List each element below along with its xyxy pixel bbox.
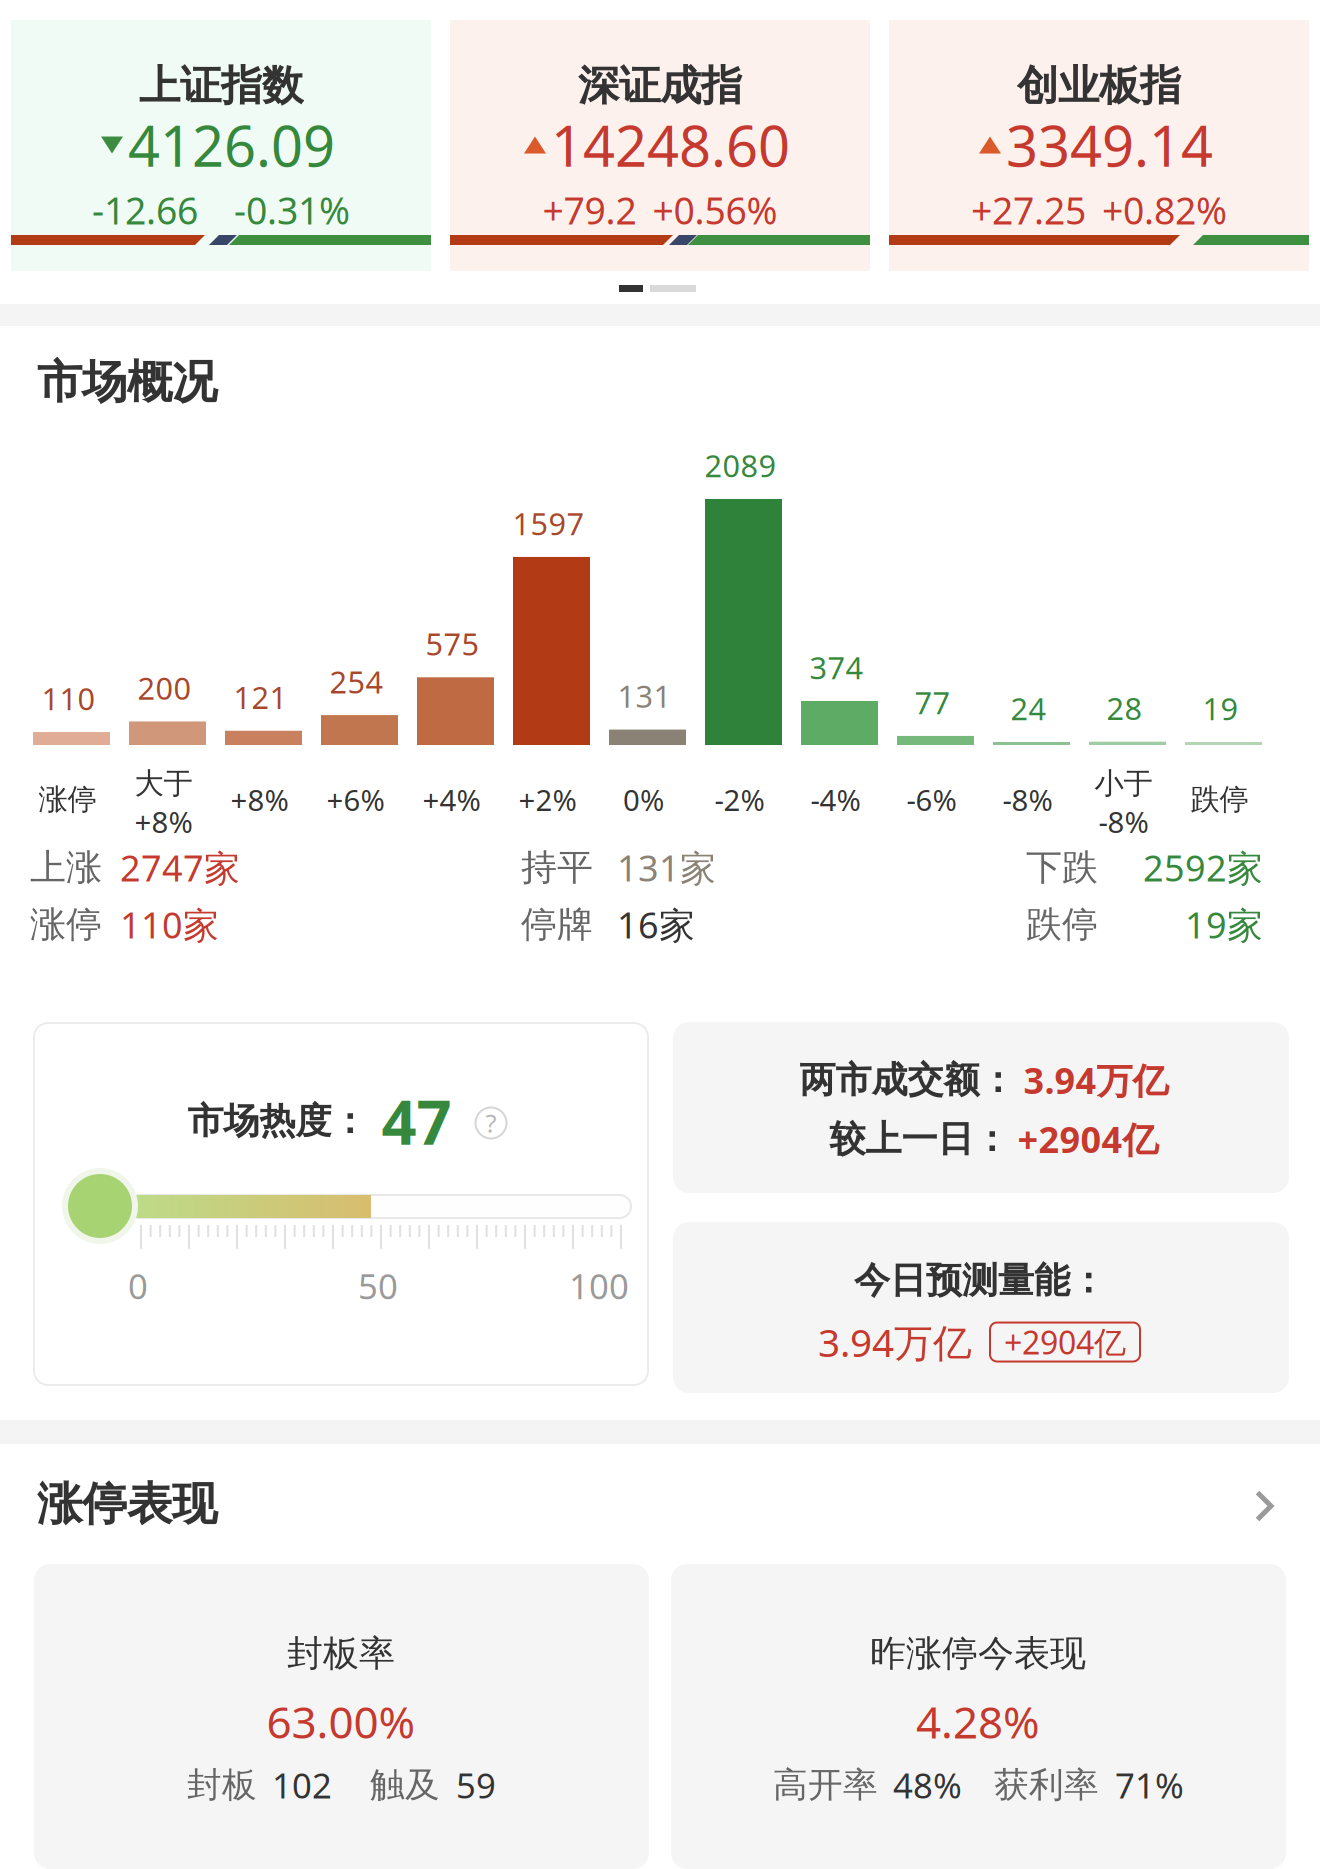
- staticText: 停牌: [521, 902, 593, 947]
- staticText: 19: [1202, 688, 1238, 729]
- staticText: +8%: [134, 802, 192, 841]
- staticText: 28: [1106, 688, 1142, 728]
- staticText: 4126.09: [128, 108, 335, 182]
- button[interactable]: 昨涨停今表现: [671, 1564, 1286, 1869]
- staticText: 3.94万亿: [818, 1316, 972, 1368]
- staticText: 131: [617, 676, 671, 716]
- staticText: +6%: [326, 780, 384, 819]
- staticText: +27.25: [971, 185, 1086, 235]
- staticText: 2592家: [1143, 844, 1263, 891]
- staticText: 110家: [120, 901, 219, 948]
- staticText: 封板: [187, 1764, 257, 1806]
- staticText: 121: [233, 677, 287, 717]
- staticText: 77: [914, 682, 950, 723]
- staticText: 涨停: [30, 902, 102, 947]
- staticText: 16家: [617, 901, 695, 948]
- staticText: 涨停: [38, 782, 96, 818]
- staticText: 持平: [521, 845, 593, 890]
- button[interactable]: 上证指数: [11, 20, 431, 271]
- staticText: -8%: [1002, 780, 1052, 819]
- staticText: 市场概况: [37, 354, 217, 410]
- staticText: 获利率: [994, 1764, 1099, 1806]
- staticText: 100: [569, 1263, 629, 1309]
- staticText: 昨涨停今表现: [870, 1631, 1086, 1676]
- staticText: 两市成交额：: [799, 1058, 1015, 1102]
- staticText: 200: [137, 667, 191, 708]
- staticText: ?: [485, 1106, 496, 1140]
- staticText: 下跌: [1026, 845, 1098, 890]
- staticText: 48%: [893, 1762, 962, 1808]
- button[interactable]: 涨停表现: [0, 1444, 1320, 1564]
- staticText: 102: [272, 1762, 332, 1808]
- staticText: 63.00%: [266, 1692, 415, 1751]
- staticText: +2904亿: [1017, 1115, 1158, 1163]
- staticText: -2%: [714, 780, 764, 819]
- staticText: +2904亿: [1004, 1321, 1126, 1363]
- staticText: 0%: [623, 780, 664, 819]
- staticText: -6%: [906, 780, 956, 819]
- staticText: +79.2: [542, 185, 636, 235]
- staticText: +0.82%: [1102, 185, 1227, 235]
- staticText: 跌停: [1190, 782, 1248, 818]
- staticText: 触及: [370, 1764, 440, 1806]
- staticText: 较上一日：: [829, 1117, 1009, 1161]
- staticText: 创业板指: [1017, 60, 1181, 111]
- staticText: 深证成指: [578, 60, 742, 111]
- staticText: 2747家: [120, 844, 240, 891]
- staticText: 2089: [704, 445, 776, 486]
- staticText: 市场热度：: [187, 1099, 367, 1143]
- staticText: 14248.60: [551, 108, 790, 182]
- staticText: 254: [329, 661, 383, 702]
- staticText: 高开率: [773, 1764, 878, 1806]
- button[interactable]: 封板率: [34, 1564, 649, 1869]
- staticText: +4%: [422, 780, 480, 819]
- staticText: 涨停表现: [37, 1476, 217, 1532]
- button[interactable]: 市场热度说明: [475, 1107, 506, 1138]
- button[interactable]: 创业板指: [889, 20, 1309, 271]
- staticText: 3.94万亿: [1023, 1056, 1168, 1104]
- staticText: 小于: [1094, 766, 1152, 802]
- staticText: 575: [425, 623, 479, 664]
- staticText: 大于: [134, 766, 192, 802]
- staticText: 71%: [1115, 1762, 1184, 1808]
- staticText: 上涨: [30, 845, 102, 890]
- staticText: 47: [381, 1080, 451, 1162]
- staticText: 3349.14: [1006, 108, 1213, 182]
- staticText: 19家: [1185, 901, 1263, 948]
- staticText: 4.28%: [916, 1692, 1040, 1751]
- staticText: 50: [358, 1263, 398, 1309]
- staticText: +8%: [230, 780, 288, 819]
- staticText: 59: [456, 1762, 496, 1808]
- staticText: 24: [1010, 688, 1046, 729]
- staticText: 今日预测量能：: [854, 1258, 1106, 1303]
- staticText: 0: [128, 1263, 148, 1309]
- button[interactable]: 深证成指: [450, 20, 870, 271]
- staticText: 131家: [617, 844, 716, 891]
- staticText: 110: [41, 678, 95, 719]
- staticText: -0.31%: [234, 185, 350, 235]
- staticText: -4%: [810, 780, 860, 819]
- staticText: [988, 136, 991, 154]
- staticText: -12.66: [92, 185, 198, 235]
- staticText: 1597: [512, 503, 584, 544]
- staticText: 上证指数: [139, 60, 303, 111]
- staticText: 跌停: [1026, 902, 1098, 947]
- staticText: 374: [809, 647, 863, 688]
- staticText: 封板率: [287, 1631, 395, 1676]
- staticText: [110, 136, 113, 154]
- staticText: +2%: [518, 780, 576, 819]
- staticText: [533, 136, 536, 154]
- staticText: +0.56%: [652, 185, 777, 235]
- staticText: -8%: [1098, 802, 1148, 841]
